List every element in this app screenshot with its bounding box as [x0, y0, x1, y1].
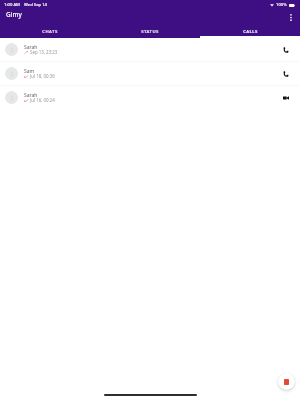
button[interactable]: Sam: [0, 62, 300, 85]
button[interactable]: Video call: [279, 91, 293, 105]
staticText: CHATS: [42, 28, 58, 34]
button[interactable]: New call: [278, 373, 295, 390]
staticText: STATUS: [141, 28, 159, 34]
staticText: Sam: [24, 68, 35, 75]
staticText: Sarah: [24, 44, 38, 51]
button[interactable]: Sarah: [0, 38, 300, 61]
staticText: Sep 13, 23:23: [30, 49, 58, 55]
staticText: 100%: [276, 2, 287, 8]
button[interactable]: More options: [286, 12, 296, 22]
staticText: 1:00 AM: [4, 2, 20, 8]
staticText: Gimy: [6, 10, 22, 19]
button[interactable]: STATUS: [100, 24, 200, 38]
button[interactable]: Sarah: [0, 86, 300, 109]
button[interactable]: Voice call: [279, 67, 293, 81]
button[interactable]: CALLS: [200, 24, 300, 38]
staticText: Jul 16, 00:24: [30, 97, 55, 103]
button[interactable]: Voice call: [279, 43, 293, 57]
staticText: Jul 18, 00:36: [30, 73, 55, 79]
staticText: Sarah: [24, 92, 38, 99]
staticText: CALLS: [243, 28, 258, 34]
staticText: Wed Sep 14: [24, 2, 47, 8]
button[interactable]: CHATS: [0, 24, 100, 38]
